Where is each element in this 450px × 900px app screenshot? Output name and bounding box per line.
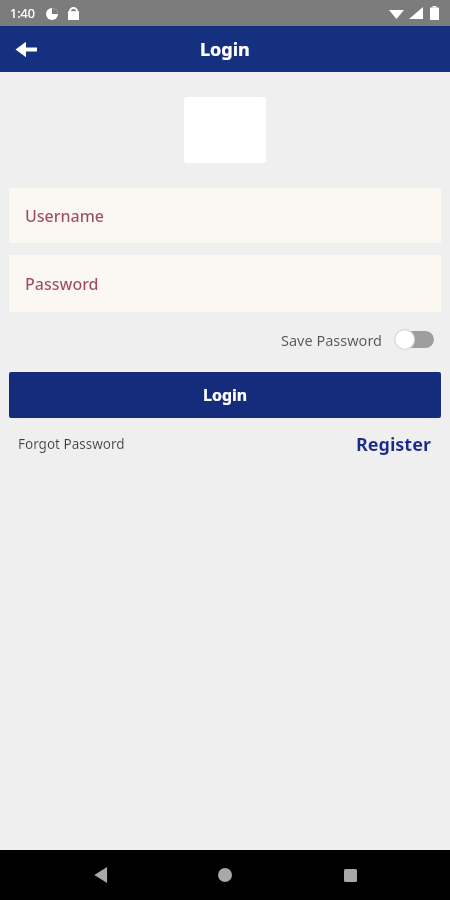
button[interactable]: Register [356,432,431,457]
button[interactable]: Recent apps [326,851,374,899]
button[interactable]: Save Password toggle [394,329,434,350]
staticText: Username [25,205,105,227]
button[interactable]: Save Password [281,324,434,355]
staticText: Forgot Password [18,435,125,453]
staticText: 1:40 [10,5,35,22]
staticText: Register [356,432,431,457]
button[interactable]: Password [9,255,441,312]
staticText: Password [25,273,99,295]
staticText: Save Password [281,330,382,350]
button[interactable]: Home [201,851,249,899]
button[interactable]: Back [77,851,125,899]
button[interactable]: Back [5,27,49,71]
button[interactable]: Login [9,372,441,418]
staticText: Login [203,384,248,406]
staticText: Login [200,37,250,62]
button[interactable]: Forgot Password [18,435,125,453]
button[interactable]: Username [9,188,441,243]
